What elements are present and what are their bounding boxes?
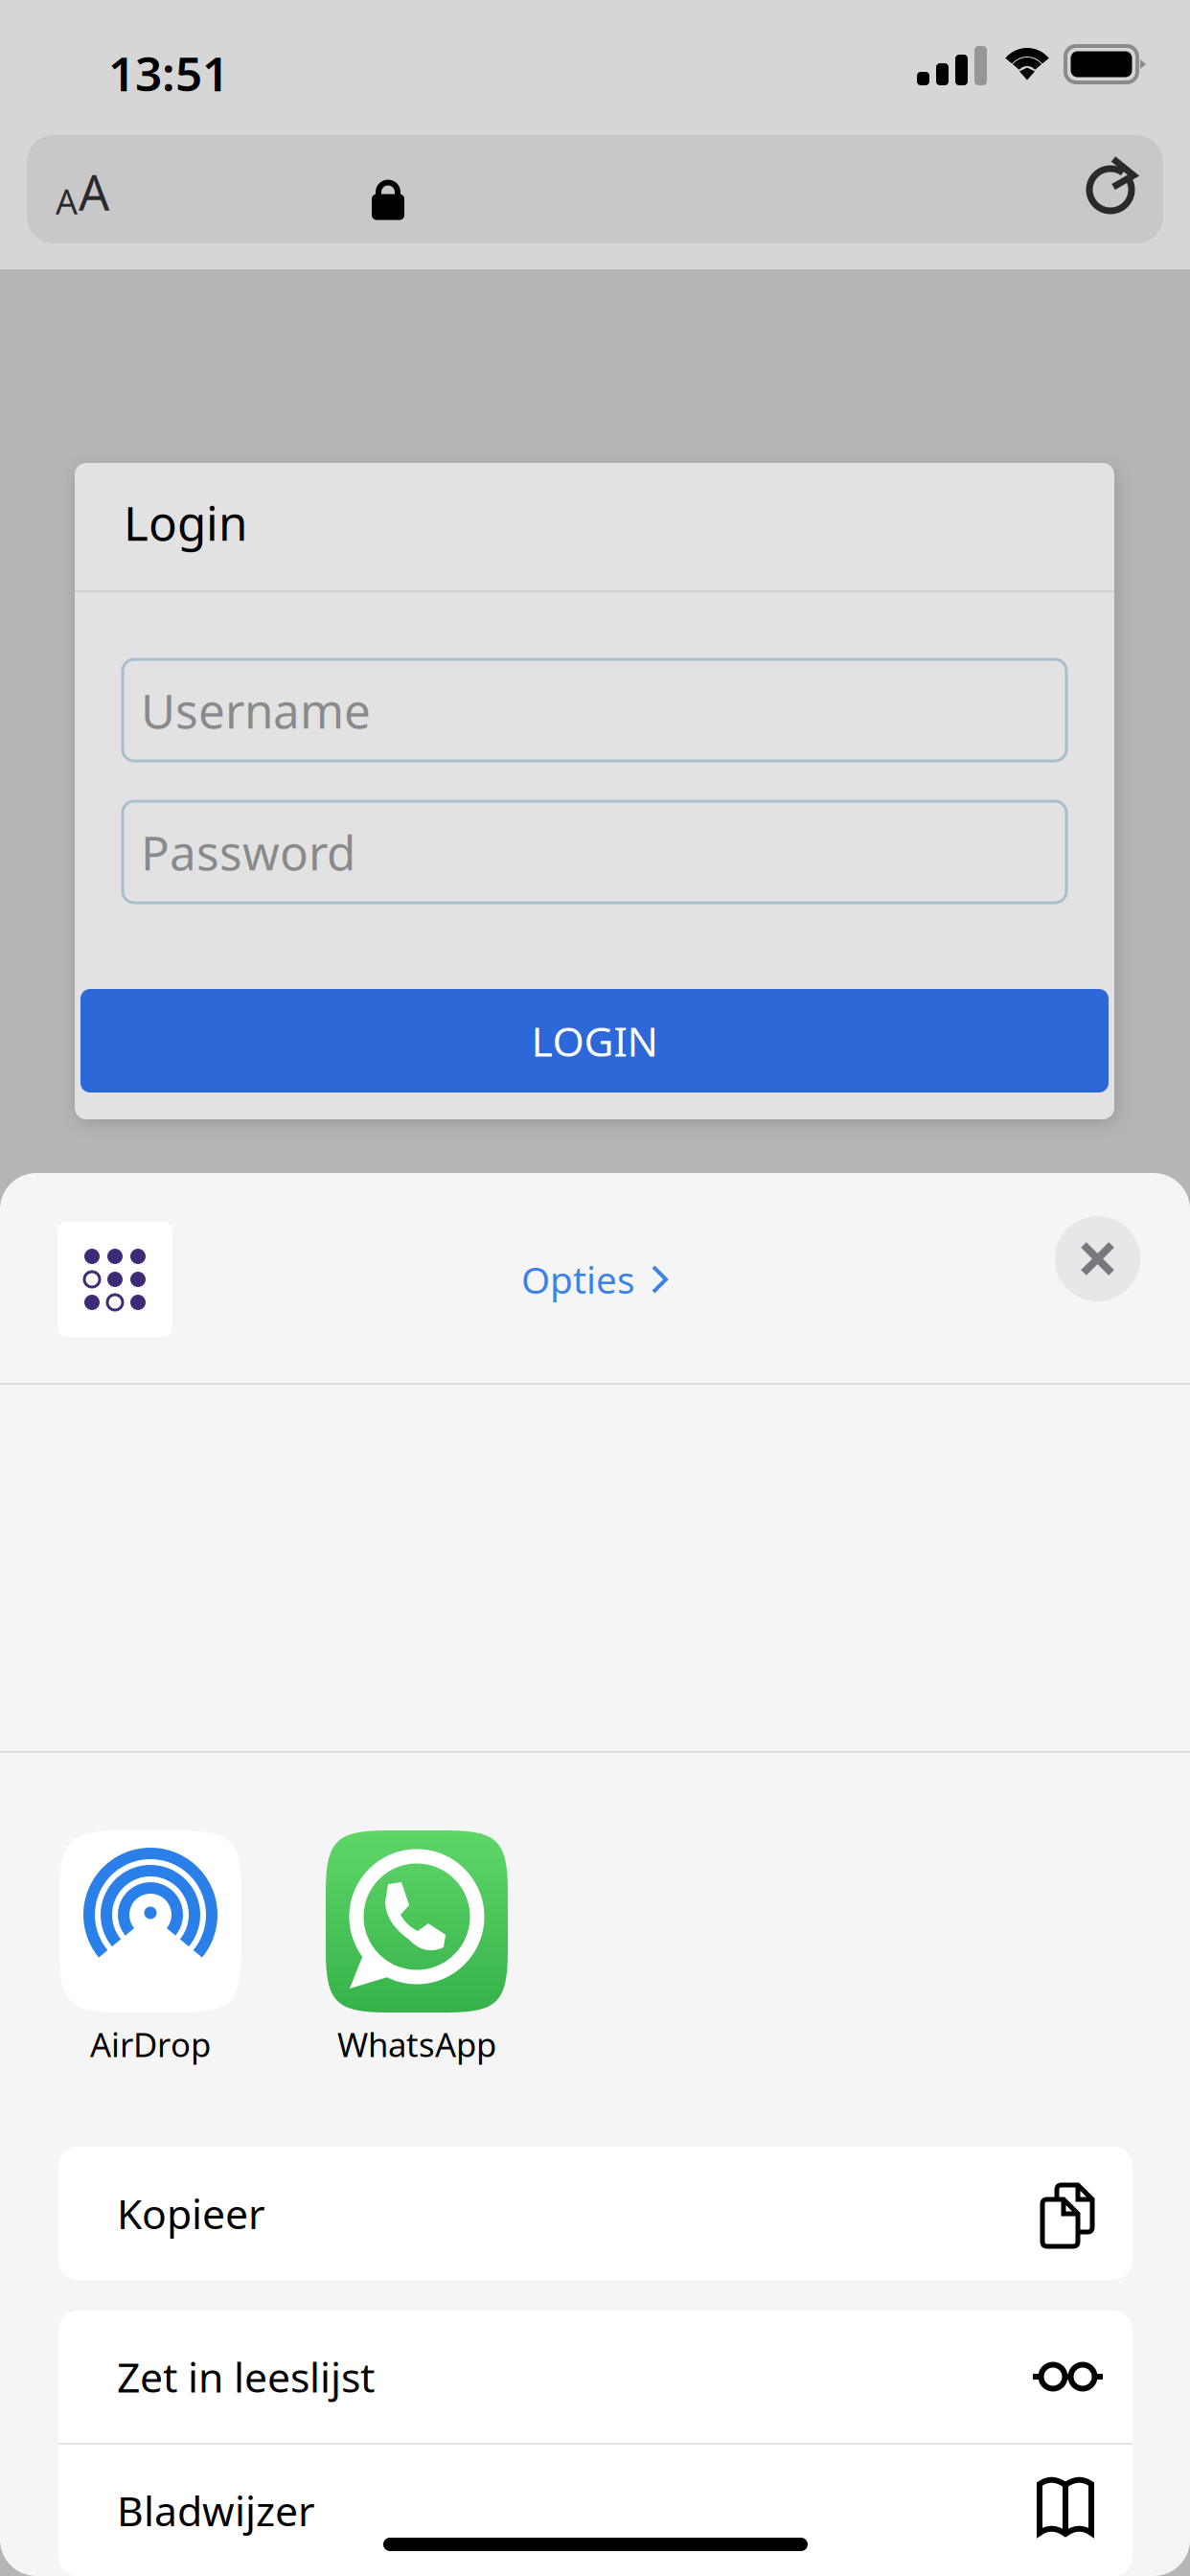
staticText: WhatsApp <box>337 2022 496 2066</box>
button[interactable]: Reload <box>0 0 1190 2576</box>
button[interactable]: Bladwijzer <box>0 0 1190 2576</box>
button[interactable]: Kopieer <box>0 0 1190 2576</box>
button[interactable]: WhatsApp <box>0 0 1190 2576</box>
button[interactable]: Close <box>0 0 1190 2576</box>
button[interactable]: Opties <box>0 0 1190 2576</box>
button[interactable]: Zet in leeslijst <box>0 0 1190 2576</box>
button[interactable]: AirDrop <box>0 0 1190 2576</box>
button[interactable]: LOGIN <box>0 0 1190 2576</box>
staticText: Opties <box>521 1255 635 1304</box>
staticText: 13:51 <box>108 41 229 104</box>
staticText: Login <box>124 491 247 554</box>
button[interactable]: Text size <box>0 0 1190 2576</box>
staticText: LOGIN <box>531 1014 658 1068</box>
staticText: Zet in leeslijst <box>117 2350 375 2404</box>
staticText: A <box>79 159 109 224</box>
staticText: AirDrop <box>90 2022 211 2066</box>
staticText: Username <box>141 679 371 741</box>
staticText: Password <box>141 821 355 883</box>
staticText: A <box>56 178 78 224</box>
staticText: Kopieer <box>117 2186 265 2240</box>
staticText: Bladwijzer <box>117 2483 315 2538</box>
